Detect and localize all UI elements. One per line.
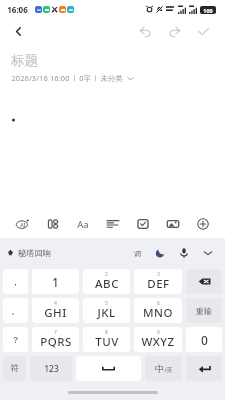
staticText: 8 bbox=[105, 329, 108, 336]
button[interactable]: Enter bbox=[186, 356, 222, 381]
staticText: 秘塔回响 bbox=[18, 248, 51, 258]
button[interactable]: Checklist bbox=[128, 210, 158, 238]
button[interactable]: Comma bbox=[3, 269, 28, 294]
staticText: 符 bbox=[10, 363, 19, 374]
button[interactable]: Back bbox=[7, 20, 29, 42]
button[interactable]: Insert bbox=[188, 210, 218, 238]
button[interactable]: 中/英 bbox=[145, 356, 182, 381]
staticText: PQRS bbox=[40, 334, 72, 350]
button[interactable]: Hide keyboard bbox=[196, 241, 220, 265]
button[interactable]: Align bbox=[98, 210, 128, 238]
staticText: 0字 bbox=[79, 73, 91, 83]
staticText: 6 bbox=[157, 300, 160, 307]
button[interactable]: Backspace bbox=[186, 269, 222, 294]
staticText: 中 bbox=[155, 363, 164, 374]
button[interactable]: 123 bbox=[30, 356, 72, 381]
staticText: 100 bbox=[203, 7, 213, 14]
staticText: /英 bbox=[164, 366, 173, 374]
staticText: WXYZ bbox=[141, 334, 175, 350]
button[interactable]: Done bbox=[189, 18, 218, 44]
staticText: TUV bbox=[95, 334, 119, 350]
staticText: AI bbox=[20, 221, 26, 228]
staticText: ？ bbox=[11, 334, 20, 345]
staticText: 2026/3/16 16:00 bbox=[11, 73, 70, 83]
button[interactable]: 0 bbox=[186, 327, 222, 352]
button[interactable]: Undo bbox=[131, 18, 160, 44]
button[interactable]: Voice input bbox=[172, 241, 196, 265]
staticText: 123 bbox=[44, 363, 59, 375]
staticText: 16:06 bbox=[7, 4, 28, 15]
button[interactable]: 重输 bbox=[186, 298, 222, 323]
button[interactable]: Redo bbox=[160, 18, 189, 44]
button[interactable]: Image bbox=[158, 210, 188, 238]
staticText: ABC bbox=[95, 276, 119, 292]
staticText: 1 bbox=[52, 274, 59, 290]
button[interactable]: Space bbox=[76, 356, 141, 381]
button[interactable]: 符 bbox=[3, 356, 26, 381]
staticText: 5 bbox=[105, 300, 108, 307]
staticText: MNO bbox=[143, 305, 173, 321]
staticText: 4 bbox=[54, 300, 57, 307]
button[interactable]: Question mark bbox=[3, 327, 28, 352]
staticText: DEF bbox=[147, 276, 170, 292]
staticText: 未分类 bbox=[100, 74, 123, 83]
staticText: 7 bbox=[54, 329, 57, 336]
staticText: Aa bbox=[77, 218, 89, 231]
staticText: 3 bbox=[157, 271, 160, 278]
button[interactable]: PQRS bbox=[32, 327, 79, 352]
staticText: ， bbox=[11, 276, 20, 287]
button[interactable]: WXYZ bbox=[134, 327, 182, 352]
staticText: 9 bbox=[157, 329, 160, 336]
staticText: 0 bbox=[201, 332, 208, 348]
button[interactable]: GHI bbox=[32, 298, 79, 323]
button[interactable]: MNO bbox=[134, 298, 182, 323]
staticText: 2 bbox=[105, 271, 108, 278]
button[interactable]: Input mode bbox=[126, 242, 148, 264]
staticText: GHI bbox=[44, 305, 67, 321]
staticText: 调 bbox=[134, 249, 141, 258]
button[interactable]: Night mode bbox=[148, 241, 172, 265]
staticText: 。 bbox=[11, 305, 20, 316]
button[interactable]: 1 bbox=[32, 269, 79, 294]
staticText: JKL bbox=[97, 305, 116, 321]
button[interactable]: TUV bbox=[83, 327, 130, 352]
button[interactable]: AI bbox=[7, 210, 38, 238]
button[interactable]: Layout bbox=[38, 210, 68, 238]
button[interactable]: DEF bbox=[134, 269, 182, 294]
button[interactable]: ABC bbox=[83, 269, 130, 294]
staticText: 重输 bbox=[196, 306, 212, 316]
button[interactable]: Period bbox=[3, 298, 28, 323]
button[interactable]: JKL bbox=[83, 298, 130, 323]
staticText: 标题 bbox=[11, 52, 38, 69]
button[interactable]: Font size bbox=[68, 210, 98, 238]
